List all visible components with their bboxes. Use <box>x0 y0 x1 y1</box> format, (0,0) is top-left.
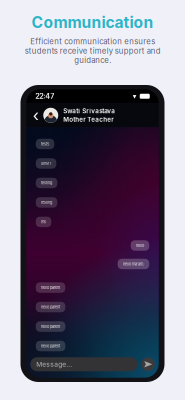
staticText: Efficient communication ensures students… <box>24 37 160 65</box>
staticText: hello ma'am. <box>123 262 144 266</box>
staticText: 22:47 <box>35 92 54 101</box>
staticText: hello parent <box>41 285 60 290</box>
staticText: hello parent <box>41 324 60 329</box>
staticText: testing <box>41 200 52 205</box>
staticText: hello parent <box>41 344 60 348</box>
staticText: ▾ <box>133 92 137 100</box>
staticText: testing <box>41 181 52 185</box>
staticText: uinsrf <box>41 161 51 166</box>
staticText: Message... <box>36 360 72 368</box>
staticText: test5 <box>41 142 49 146</box>
staticText: hello <box>136 243 144 248</box>
staticText: Communication <box>31 13 153 32</box>
staticText: Mother Teacher <box>63 116 113 123</box>
staticText: hello parent <box>41 305 60 309</box>
staticText: ‹ <box>33 106 39 125</box>
button[interactable]: Back <box>30 106 41 124</box>
button[interactable]: Send <box>141 357 155 371</box>
staticText: ms <box>41 220 46 224</box>
staticText: Swati Srivastava <box>63 107 115 115</box>
